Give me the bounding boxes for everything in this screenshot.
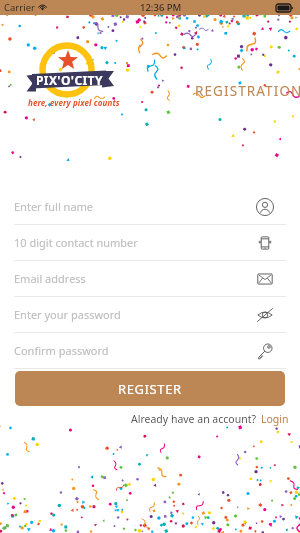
button[interactable]: Email address: [14, 261, 286, 297]
staticText: Confirm password: [14, 343, 256, 358]
staticText: here, every pixel counts: [28, 97, 120, 108]
other: Password: [256, 342, 274, 360]
staticText: PIX'O'CITY: [36, 72, 103, 88]
button[interactable]: Login: [257, 410, 293, 428]
staticText: Carrier: [4, 1, 35, 14]
button[interactable]: Confirm password: [14, 333, 286, 369]
staticText: Enter full name: [14, 199, 256, 214]
staticText: 10 digit contact number: [14, 235, 256, 250]
staticText: Already have an account?: [131, 412, 257, 426]
button[interactable]: 10 digit contact number: [14, 225, 286, 261]
button[interactable]: REGISTER: [15, 371, 285, 406]
staticText: Email address: [14, 271, 256, 286]
other: Full name: [256, 198, 274, 216]
staticText: REGISTER: [118, 380, 182, 398]
staticText: Enter your password: [14, 307, 256, 322]
other: Email: [256, 270, 274, 288]
staticText: REGISTRATION: [195, 82, 300, 100]
button[interactable]: Enter your password: [14, 297, 286, 333]
staticText: Login: [261, 412, 289, 426]
other: Contact number: [256, 234, 274, 252]
button[interactable]: Enter full name: [14, 189, 286, 225]
staticText: 12:36 PM: [140, 1, 182, 14]
other: Show password: [256, 306, 274, 324]
